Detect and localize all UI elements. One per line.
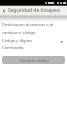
staticText: Desbloqueo al reiniciar o al	[2, 22, 53, 27]
button[interactable]: Código y dígitos	[2, 38, 65, 50]
staticText: Código y dígitos	[2, 38, 33, 43]
staticText: cambiar el código.	[2, 30, 37, 35]
staticText: Cambiar código	[19, 58, 49, 63]
button[interactable]: Back	[0, 6, 8, 15]
button[interactable]: Cambiar código	[2, 56, 65, 64]
staticText: Seguridad de bloqueo	[8, 7, 60, 14]
staticText: Contraseña	[2, 45, 24, 50]
